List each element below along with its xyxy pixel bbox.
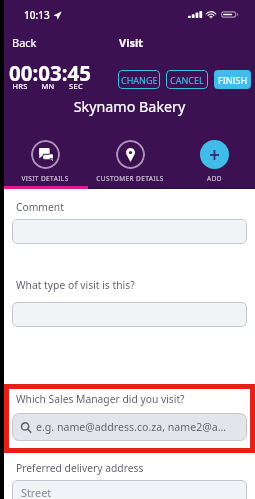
- staticText: 10:13: [24, 8, 50, 22]
- staticText: CHANGE: [121, 74, 158, 86]
- staticText: CUSTOMER DETAILS: [96, 174, 164, 183]
- staticText: What type of visit is this?: [16, 278, 135, 292]
- staticText: FINISH: [218, 74, 248, 86]
- staticText: CANCEL: [170, 74, 204, 86]
- button[interactable]: CUSTOMER DETAILS: [85, 140, 175, 183]
- button[interactable]: CANCEL: [166, 70, 208, 89]
- button[interactable]: CHANGE: [118, 70, 160, 89]
- button[interactable]: FINISH: [214, 70, 251, 89]
- staticText: 00:03:45: [9, 59, 91, 87]
- staticText: Visit: [119, 35, 144, 50]
- staticText: Street: [21, 485, 52, 499]
- staticText: Comment: [16, 200, 64, 214]
- button[interactable]: Street: [12, 480, 247, 499]
- staticText: VISIT DETAILS: [21, 174, 69, 183]
- staticText: Preferred delivery address: [16, 461, 144, 475]
- staticText: MN: [34, 81, 62, 91]
- button[interactable]: VISIT DETAILS: [0, 140, 90, 183]
- button[interactable]: Back: [4, 31, 45, 53]
- staticText: e.g. name@address.co.za, name2@a...: [36, 420, 227, 434]
- staticText: ADD: [207, 174, 222, 183]
- button[interactable]: [12, 219, 247, 244]
- button[interactable]: ADD: [169, 140, 255, 183]
- staticText: Back: [12, 35, 37, 49]
- staticText: Skynamo Bakery: [4, 97, 255, 116]
- button[interactable]: [12, 302, 247, 327]
- staticText: SEC: [62, 81, 90, 91]
- staticText: Which Sales Manager did you visit?: [16, 392, 185, 406]
- staticText: HRS: [6, 81, 34, 91]
- button[interactable]: e.g. name@address.co.za, name2@a...: [12, 413, 247, 441]
